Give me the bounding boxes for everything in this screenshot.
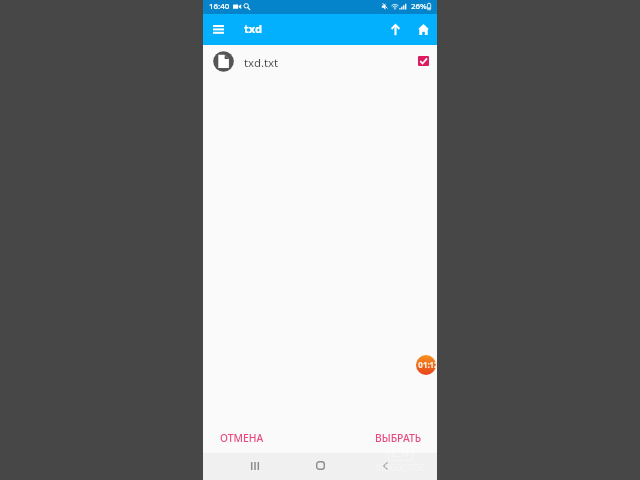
button[interactable]: Open navigation drawer xyxy=(208,19,229,40)
button[interactable]: Back xyxy=(374,454,397,477)
staticText: 01:12 xyxy=(418,360,437,371)
button[interactable]: Go up one level xyxy=(385,19,406,40)
staticText: txd xyxy=(244,21,263,36)
staticText: ВЫБРАТЬ xyxy=(375,431,422,445)
staticText: ОТМЕНА xyxy=(220,431,264,445)
button[interactable]: txd.txt xyxy=(203,45,437,78)
staticText: VIDEOCODE xyxy=(376,462,425,473)
button[interactable]: Recent apps xyxy=(243,454,266,477)
button[interactable]: ОТМЕНА xyxy=(203,422,320,453)
button[interactable]: File selected xyxy=(411,49,435,73)
button[interactable]: Go to home folder xyxy=(413,19,434,40)
staticText: 26% xyxy=(411,1,427,12)
staticText: txd.txt xyxy=(244,55,279,71)
button[interactable]: Recording timer 01:12 xyxy=(416,355,436,375)
button[interactable]: Home xyxy=(309,454,332,477)
button[interactable]: ВЫБРАТЬ xyxy=(320,422,437,453)
staticText: 16:40 xyxy=(209,1,230,12)
